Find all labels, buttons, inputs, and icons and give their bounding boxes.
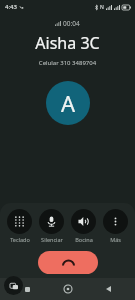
staticText: Más [110,236,121,243]
button[interactable]: Cambiar de app [4,276,23,295]
button[interactable]: Teclado [6,208,33,244]
button[interactable]: Inicio [61,282,75,296]
button[interactable]: Más [102,208,129,244]
button[interactable]: Finalizar llamada [38,251,98,274]
staticText: Aisha 3C [0,32,135,54]
button[interactable]: Silenciar [38,208,65,244]
staticText: Celular 310 3489704 [0,59,135,67]
staticText: Teclado [10,236,30,243]
staticText: Bocina [75,236,93,243]
button[interactable]: Recientes [20,282,34,296]
staticText: 00:04 [63,19,80,28]
staticText: A [61,88,76,118]
button[interactable]: Atrás [101,282,115,296]
button[interactable]: Bocina [70,208,97,244]
staticText: N [100,4,104,11]
staticText: 4:43 [5,3,17,11]
staticText: Silenciar [41,236,63,243]
